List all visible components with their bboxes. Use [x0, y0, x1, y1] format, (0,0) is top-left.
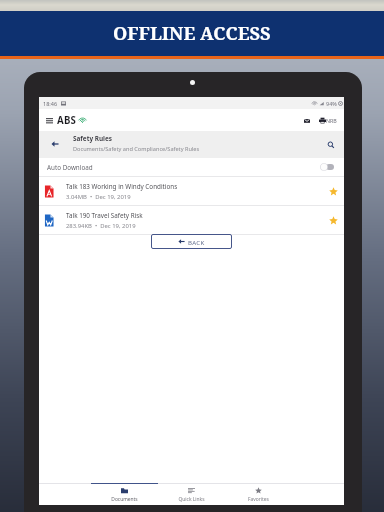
button[interactable]: BACK — [151, 234, 232, 249]
staticText: Safety Rules — [73, 134, 112, 143]
button[interactable]: Favorites — [225, 484, 292, 505]
button[interactable]: Mail — [300, 114, 313, 127]
button[interactable]: Print NRB — [319, 117, 337, 124]
button[interactable]: Back — [39, 131, 72, 158]
staticText: ABS — [57, 114, 77, 127]
staticText: Quick Links — [178, 496, 205, 503]
staticText: BACK — [188, 238, 205, 246]
button[interactable]: Talk 190 Travel Safety Risk — [39, 206, 344, 234]
staticText: OFFLINE ACCESS — [113, 21, 271, 46]
button[interactable]: Menu — [43, 114, 55, 126]
staticText: 283.94KB • Dec 19, 2019 — [66, 222, 136, 230]
staticText: Documents — [111, 496, 138, 503]
button[interactable]: Favorite — [325, 183, 341, 199]
staticText: Favorites — [248, 496, 269, 503]
button[interactable]: Documents — [91, 484, 158, 505]
button[interactable]: Favorite — [325, 212, 341, 228]
button[interactable]: Quick Links — [158, 484, 225, 505]
button[interactable]: Search — [318, 131, 344, 158]
button[interactable]: Talk 183 Working in Windy Conditions — [39, 177, 344, 205]
staticText: 94% — [326, 100, 337, 107]
staticText: Talk 190 Travel Safety Risk — [66, 211, 143, 220]
staticText: 3.04MB • Dec 19, 2019 — [66, 193, 131, 201]
staticText: Talk 183 Working in Windy Conditions — [66, 182, 178, 191]
staticText: 18:46 — [43, 100, 58, 107]
staticText: NRB — [326, 117, 337, 124]
staticText: Documents/Safety and Compliance/Safety R… — [73, 145, 200, 153]
button[interactable]: Auto Download — [39, 158, 344, 176]
staticText: Auto Download — [47, 163, 93, 172]
